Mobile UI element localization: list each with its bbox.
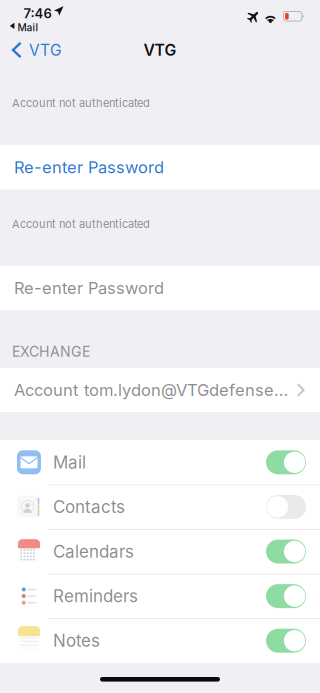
staticText: Re-enter Password [14,278,164,298]
staticText: Notes [53,630,100,651]
button[interactable]: Re-enter Password [0,145,320,189]
button[interactable]: Contacts [0,485,320,529]
staticText: 7:46 [23,6,51,21]
button[interactable]: Notes [0,618,320,663]
staticText: VTG [143,40,176,59]
staticText: Account not authenticated [12,96,150,110]
button[interactable]: Mail [0,440,320,485]
staticText: Contacts [53,497,125,517]
staticText: Mail [53,452,86,473]
staticText: Mail [17,21,38,34]
staticText: Re-enter Password [14,157,164,177]
button[interactable]: Reminders [0,574,320,618]
button[interactable]: Account [0,368,320,412]
staticText: tom.lydon@VTGdefense.... [84,380,289,400]
button[interactable]: Calendars [0,529,320,574]
button[interactable]: VTG [0,30,70,70]
staticText: Reminders [53,586,138,606]
staticText: EXCHANGE [12,343,90,360]
staticText: VTG [29,41,62,59]
staticText: Calendars [53,541,134,562]
staticText: Account not authenticated [12,217,150,231]
staticText: Account [14,380,78,400]
button[interactable]: Re-enter Password [0,266,320,310]
